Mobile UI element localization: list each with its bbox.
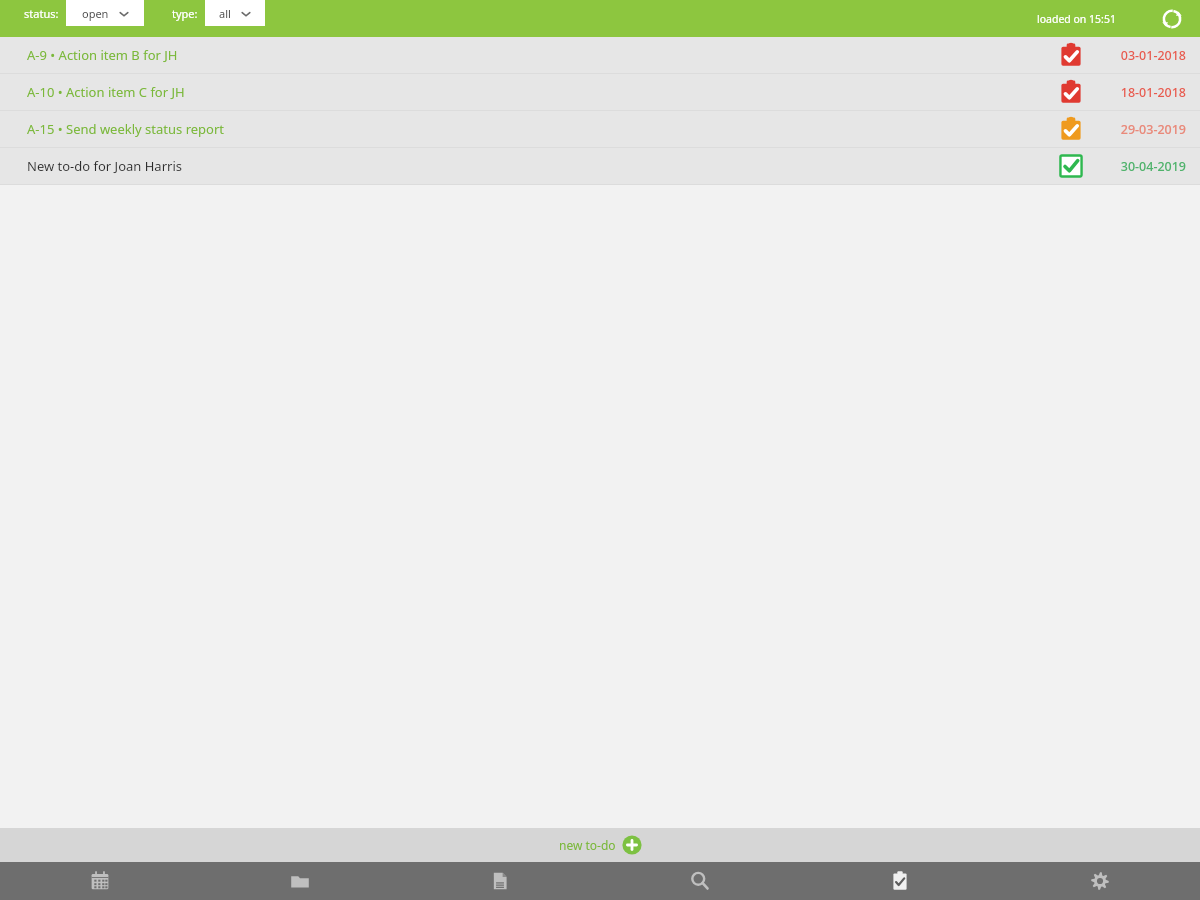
button[interactable]: Folders xyxy=(200,862,400,900)
staticText: A-10 • Action item C for JH xyxy=(27,83,185,101)
staticText: New to-do for Joan Harris xyxy=(27,157,182,175)
staticText: loaded on 15:51 xyxy=(1037,12,1116,26)
button[interactable]: Refresh xyxy=(1158,5,1186,33)
staticText: 29-03-2019 xyxy=(1120,121,1186,138)
staticText: status: xyxy=(24,6,59,21)
staticText: type: xyxy=(172,6,198,21)
staticText: A-9 • Action item B for JH xyxy=(27,46,178,64)
button[interactable]: all xyxy=(205,0,265,26)
button[interactable]: A-9 • Action item B for JH xyxy=(0,37,1200,73)
staticText: open xyxy=(82,6,109,21)
staticText: 03-01-2018 xyxy=(1120,47,1186,64)
staticText: new to-do xyxy=(559,837,616,853)
button[interactable]: new to-do xyxy=(553,833,648,857)
staticText: A-15 • Send weekly status report xyxy=(27,120,224,138)
button[interactable]: Calendar xyxy=(0,862,200,900)
staticText: 18-01-2018 xyxy=(1120,84,1186,101)
button[interactable]: open xyxy=(66,0,144,26)
staticText: all xyxy=(219,6,231,21)
button[interactable]: Search xyxy=(600,862,800,900)
button[interactable]: Documents xyxy=(400,862,600,900)
button[interactable]: A-15 • Send weekly status report xyxy=(0,111,1200,147)
button[interactable]: To-dos xyxy=(800,862,1000,900)
button[interactable]: Settings xyxy=(1000,862,1200,900)
button[interactable]: A-10 • Action item C for JH xyxy=(0,74,1200,110)
staticText: 30-04-2019 xyxy=(1120,158,1186,175)
button[interactable]: New to-do for Joan Harris xyxy=(0,148,1200,184)
